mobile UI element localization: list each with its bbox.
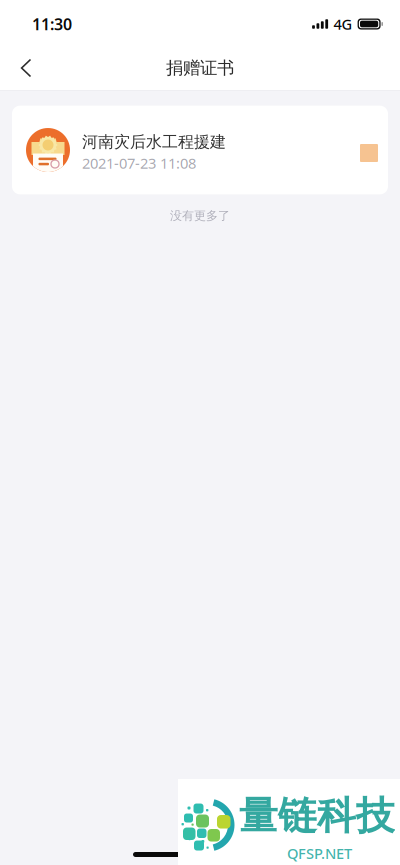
staticText: 2021-07-23 11:08: [82, 153, 196, 173]
staticText: 河南灾后水工程援建: [82, 132, 226, 152]
button[interactable]: 河南灾后水工程援建: [12, 106, 388, 194]
staticText: 捐赠证书: [166, 57, 234, 79]
button[interactable]: Back: [5, 46, 47, 90]
staticText: 11:30: [32, 13, 72, 35]
staticText: 没有更多了: [170, 208, 230, 223]
staticText: 4G: [334, 14, 353, 34]
staticText: QFSP.NET: [287, 843, 352, 863]
staticText: 量链科技: [239, 792, 395, 839]
